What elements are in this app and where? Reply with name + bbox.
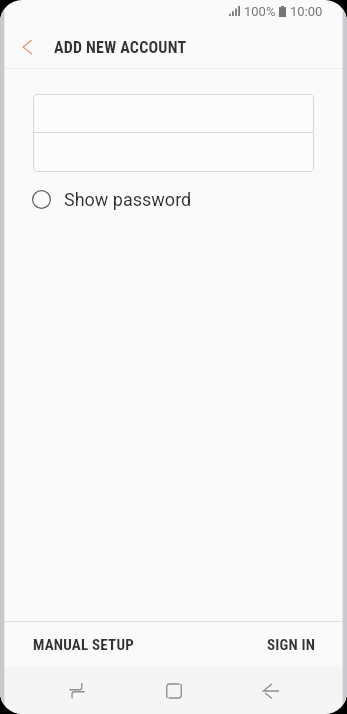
staticText: MANUAL SETUP bbox=[33, 636, 134, 654]
button[interactable]: Back bbox=[0, 26, 54, 68]
staticText: 10:00 bbox=[290, 4, 323, 19]
staticText: 100% bbox=[244, 4, 276, 19]
button[interactable]: MANUAL SETUP bbox=[0, 622, 173, 667]
button[interactable]: SIGN IN bbox=[173, 622, 347, 667]
staticText: ADD NEW ACCOUNT bbox=[54, 38, 187, 57]
button[interactable]: Back bbox=[222, 667, 319, 714]
button[interactable]: Home bbox=[125, 667, 222, 714]
button[interactable]: Show password bbox=[0, 183, 347, 215]
staticText: SIGN IN bbox=[267, 636, 316, 654]
button[interactable] bbox=[33, 133, 314, 172]
staticText: Show password bbox=[64, 189, 192, 210]
button[interactable] bbox=[33, 94, 314, 132]
button[interactable]: Recent apps bbox=[28, 667, 125, 714]
